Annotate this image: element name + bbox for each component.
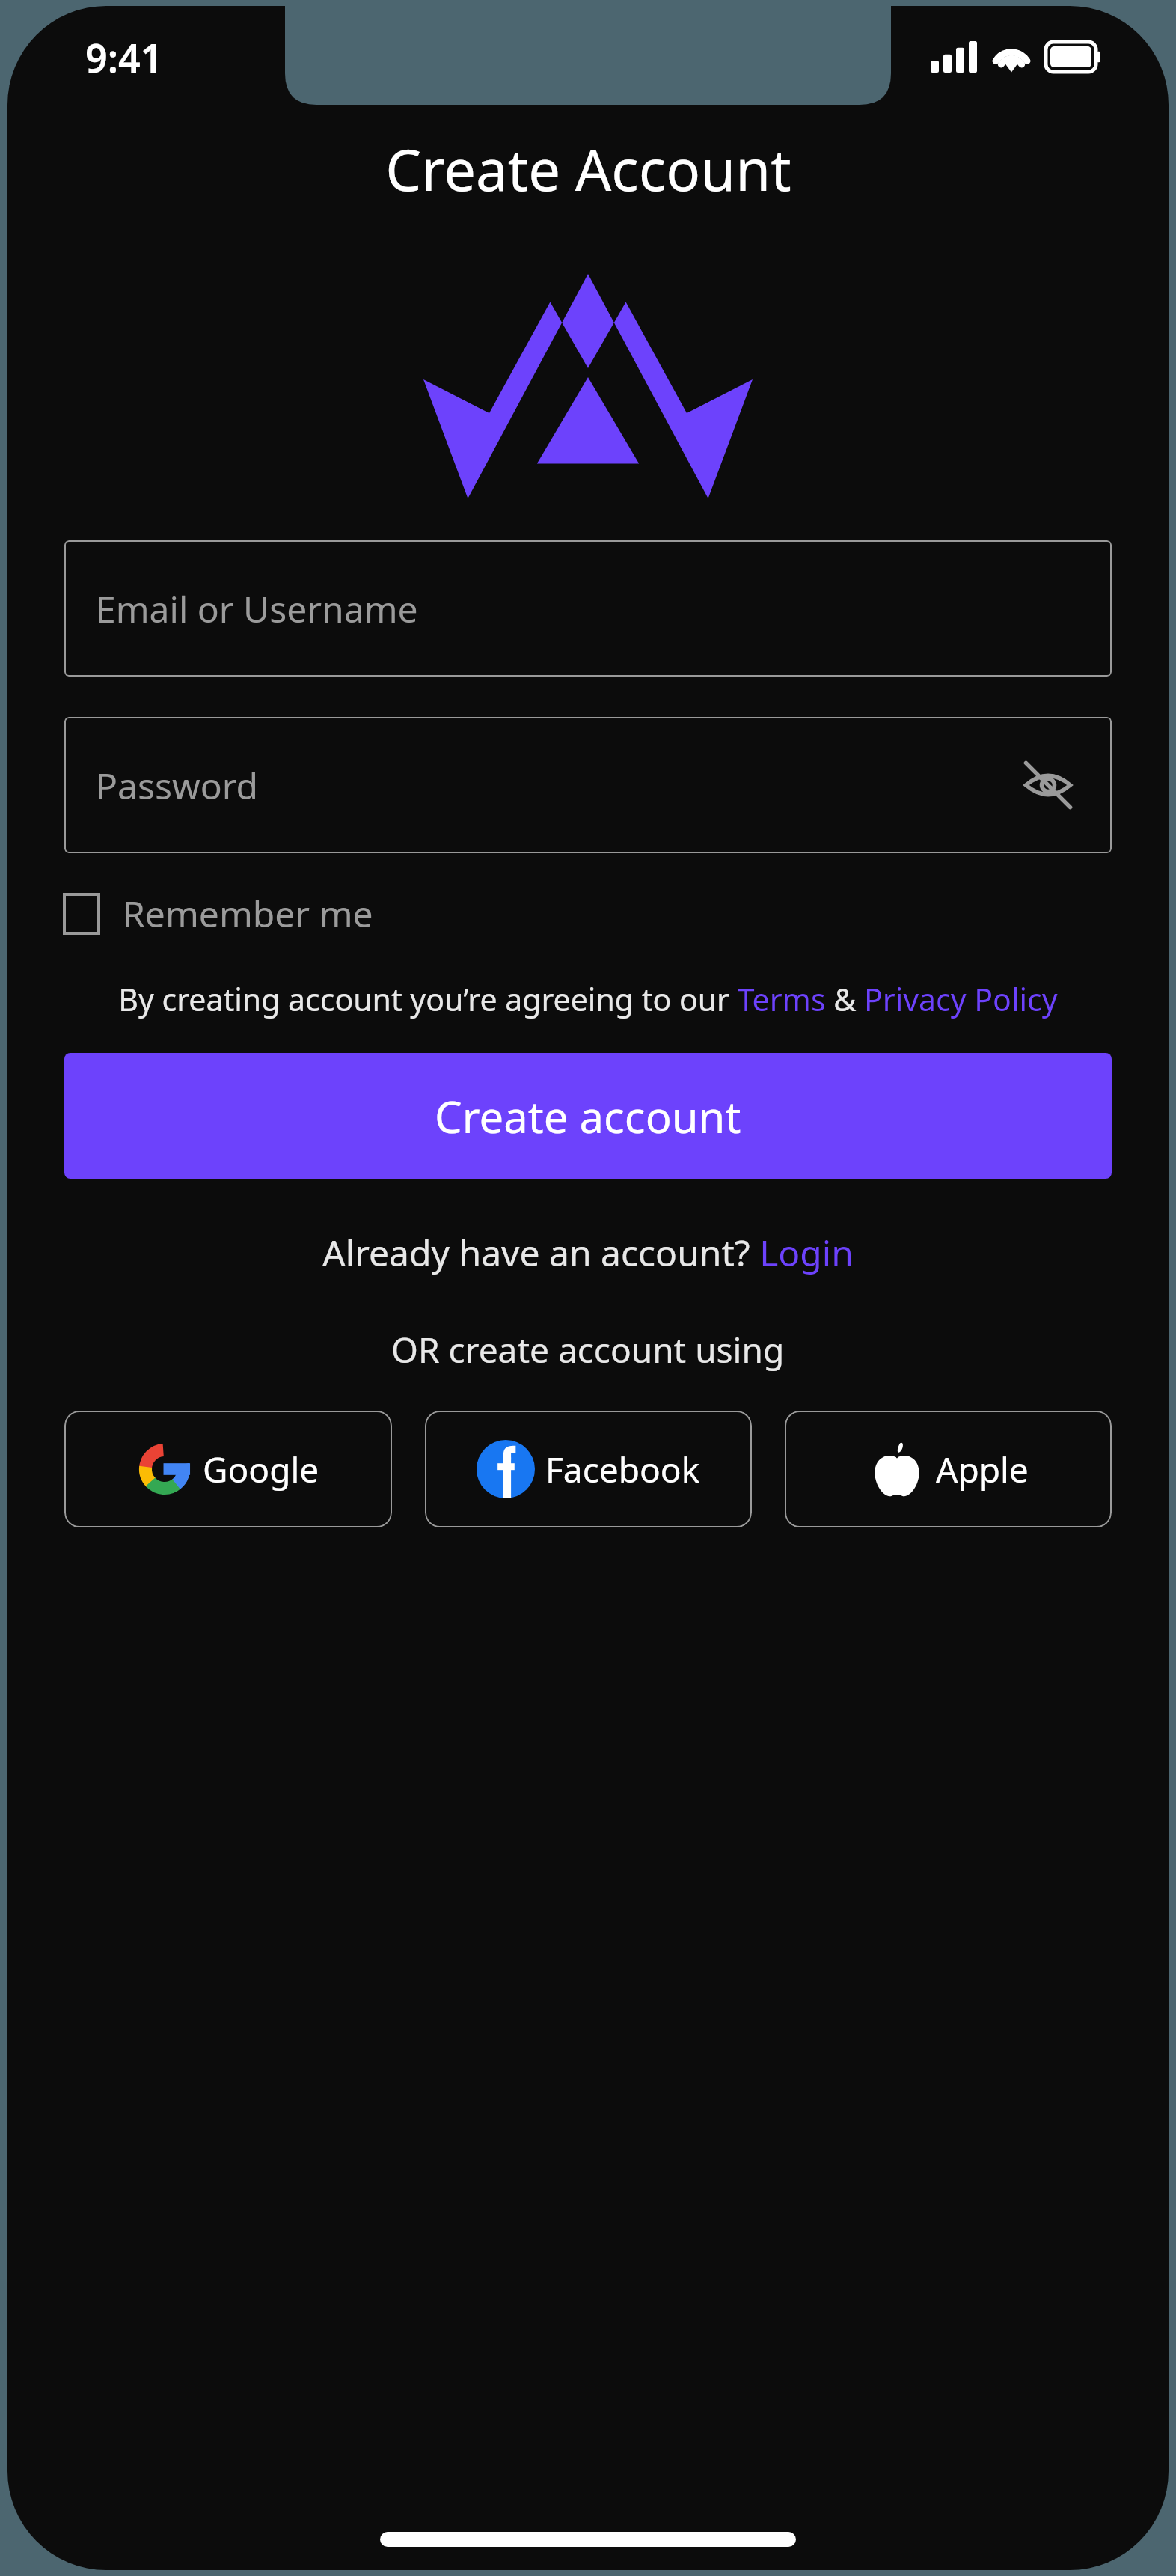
button[interactable]: Email or Username (64, 540, 1112, 677)
staticText: Email or Username (96, 585, 1080, 633)
button[interactable]: Already have an account? Login (64, 1228, 1112, 1277)
staticText: Create Account (385, 130, 791, 208)
button[interactable]: By creating account you’re agreeing to o… (64, 978, 1112, 1020)
staticText: Apple (936, 1446, 1029, 1493)
staticText: By creating account you’re agreeing to o… (118, 978, 1058, 1020)
staticText: Create account (435, 1087, 741, 1146)
button[interactable]: Create account (64, 1053, 1112, 1179)
button[interactable]: Remember me (64, 885, 373, 942)
staticText: Google (203, 1446, 319, 1493)
button[interactable]: Password (64, 717, 1112, 853)
staticText: OR create account using (391, 1326, 785, 1373)
button[interactable]: Facebook (425, 1411, 752, 1527)
staticText: Password (96, 761, 1016, 810)
staticText: Remember me (123, 889, 373, 938)
button[interactable]: Apple (785, 1411, 1112, 1527)
staticText: 9:41 (85, 31, 163, 84)
staticText: Facebook (545, 1446, 700, 1493)
button[interactable]: Show password (1016, 753, 1080, 817)
button[interactable]: Google (64, 1411, 392, 1527)
staticText: Already have an account? Login (322, 1228, 854, 1277)
